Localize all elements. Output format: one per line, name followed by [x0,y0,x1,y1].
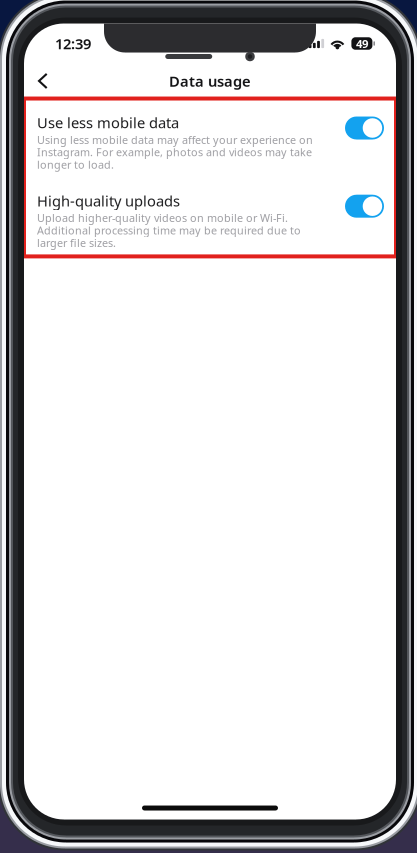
button[interactable]: Use less mobile data [37,115,384,171]
staticText: Use less mobile data [37,113,179,132]
button[interactable]: Toggle on [345,195,384,218]
staticText: longer to load. [37,157,114,172]
staticText: 49 [356,36,368,51]
button[interactable]: Back [24,66,62,96]
button[interactable]: High-quality uploads [37,194,384,249]
staticText: Using less mobile data may affect your e… [37,132,313,147]
staticText: High-quality uploads [37,191,180,210]
button[interactable]: Toggle on [345,116,384,139]
staticText: Upload higher-quality videos on mobile o… [37,211,288,225]
staticText: 12:39 [55,34,91,53]
staticText: Data usage [169,71,251,91]
staticText: Instagram. For example, photos and video… [37,145,312,159]
staticText: Additional processing time may be requir… [37,223,301,237]
staticText: larger file sizes. [37,235,116,250]
